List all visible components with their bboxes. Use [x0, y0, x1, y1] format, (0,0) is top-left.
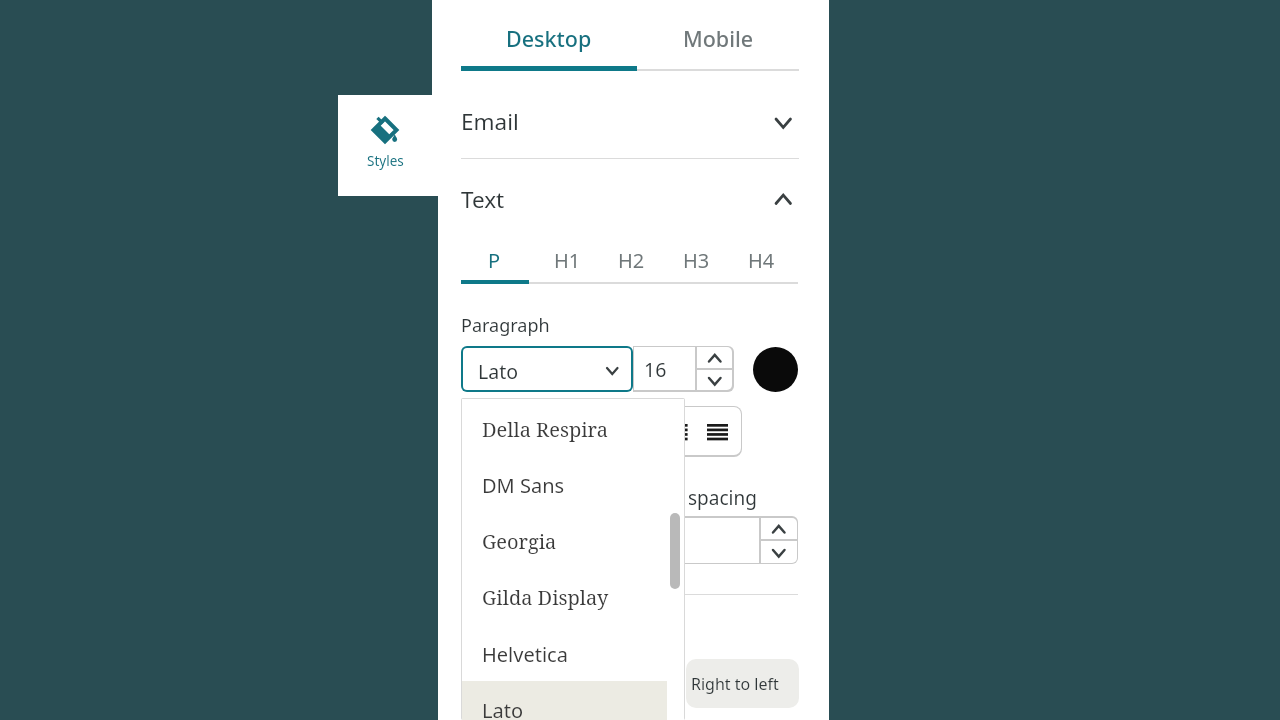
button[interactable] [695, 346, 734, 369]
button[interactable]: H1 [533, 240, 601, 280]
button[interactable]: Lato [462, 682, 667, 720]
button[interactable]: Email [461, 96, 799, 150]
staticText: H1 [554, 247, 581, 274]
button[interactable]: Desktop [461, 15, 637, 61]
staticText: H4 [748, 247, 775, 274]
button[interactable]: Right to left [686, 659, 799, 708]
staticText: Helvetica [482, 641, 568, 668]
staticText: P [488, 247, 501, 274]
staticText: 16 [644, 356, 667, 383]
button[interactable]: Mobile [637, 15, 799, 61]
button[interactable]: H3 [663, 240, 729, 280]
button[interactable]: 16 [627, 346, 683, 392]
staticText: Lato [482, 697, 524, 720]
staticText: Styles [367, 152, 404, 170]
staticText: Email [461, 106, 519, 137]
staticText: Gilda Display [482, 584, 609, 611]
button[interactable]: Gilda Display [462, 569, 667, 625]
button[interactable]: Della Respira [462, 401, 667, 457]
staticText: DM Sans [482, 472, 565, 499]
button[interactable]: Helvetica [462, 626, 667, 682]
button[interactable]: H2 [597, 240, 665, 280]
button[interactable]: DM Sans [462, 457, 667, 513]
button[interactable]: P [460, 240, 528, 280]
staticText: Desktop [506, 24, 592, 53]
staticText: Paragraph [461, 313, 550, 338]
button[interactable]: Text [461, 172, 799, 226]
button[interactable] [661, 407, 741, 455]
button[interactable] [759, 539, 798, 564]
staticText: Right to left [691, 673, 779, 695]
staticText: Text [461, 184, 505, 215]
button[interactable] [338, 95, 438, 196]
button[interactable]: Georgia [462, 513, 667, 569]
button[interactable] [461, 346, 633, 392]
button[interactable] [695, 368, 734, 391]
button[interactable]: H4 [727, 240, 795, 280]
staticText: H2 [618, 247, 645, 274]
button[interactable] [759, 516, 798, 539]
staticText: Della Respira [482, 416, 608, 443]
button[interactable] [753, 347, 798, 392]
staticText: Mobile [683, 24, 754, 53]
staticText: Georgia [482, 528, 557, 555]
staticText: H3 [683, 247, 710, 274]
staticText: Lato [478, 358, 518, 385]
staticText: spacing [688, 485, 757, 511]
